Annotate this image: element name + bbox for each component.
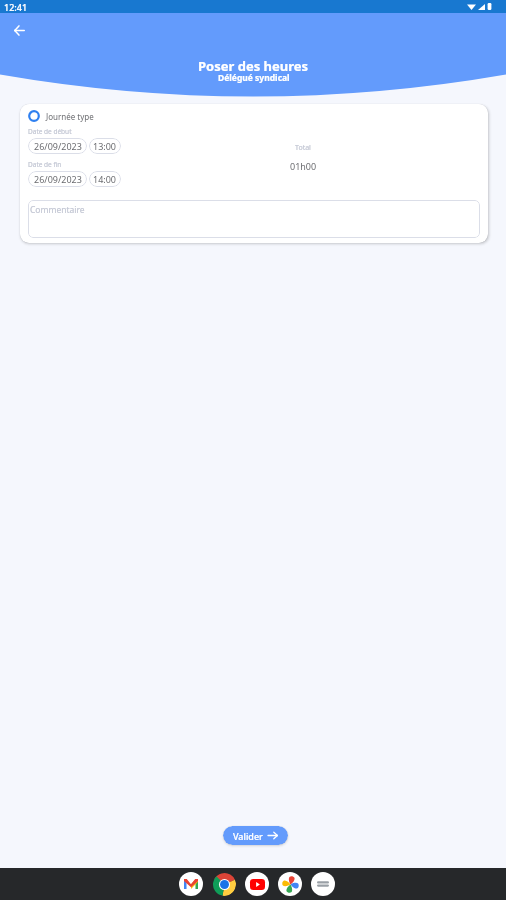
staticText: Commentaire [30, 204, 85, 216]
staticText: 14:00 [93, 173, 117, 185]
button[interactable]: 26/09/2023 [28, 171, 87, 187]
staticText: 01h00 [290, 160, 317, 172]
button[interactable]: Back [7, 18, 31, 42]
button[interactable]: Commentaire [28, 200, 480, 238]
staticText: Poser des heures [198, 57, 309, 75]
button[interactable]: Gmail [179, 872, 203, 896]
staticText: Journée type [46, 111, 94, 122]
staticText: Date de début [28, 127, 72, 136]
staticText: 26/09/2023 [34, 173, 82, 185]
button[interactable]: 13:00 [89, 138, 121, 154]
staticText: 26/09/2023 [34, 140, 82, 152]
staticText: 12:41 [4, 1, 28, 13]
staticText: Délégué syndical [218, 72, 290, 84]
button[interactable]: 26/09/2023 [28, 138, 87, 154]
staticText: 13:00 [93, 140, 117, 152]
staticText: Total [295, 143, 311, 153]
button[interactable]: All apps [311, 872, 335, 896]
button[interactable]: 14:00 [89, 171, 121, 187]
button[interactable]: YouTube [245, 872, 269, 896]
button[interactable]: Photos [278, 872, 302, 896]
staticText: Date de fin [28, 160, 62, 169]
staticText: Valider [233, 830, 263, 842]
button[interactable]: Chrome [212, 872, 236, 896]
button[interactable]: Valider [223, 826, 288, 845]
